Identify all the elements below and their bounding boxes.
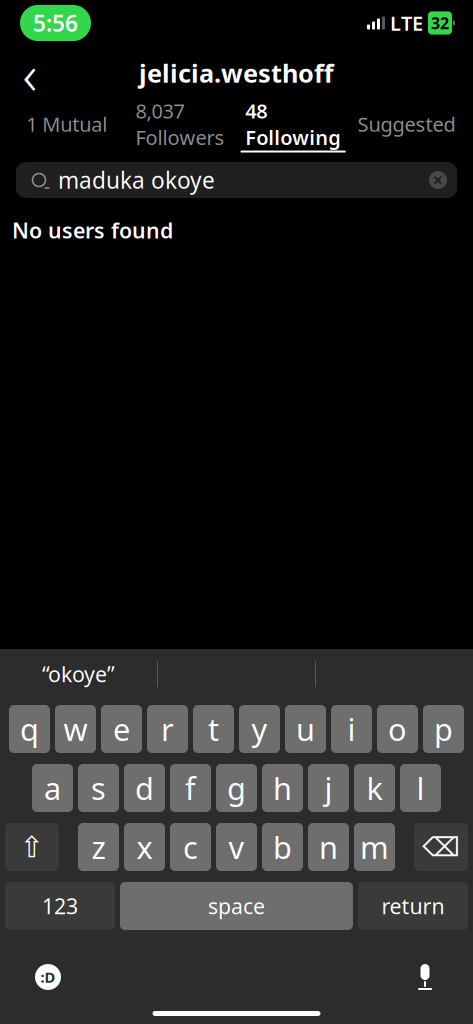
- staticText: ⇧: [19, 830, 44, 864]
- staticText: f: [185, 768, 196, 808]
- staticText: y: [251, 709, 267, 749]
- button[interactable]: b: [262, 823, 303, 871]
- staticText: ‹: [22, 36, 37, 110]
- button[interactable]: z: [78, 823, 119, 871]
- staticText: return: [381, 892, 444, 920]
- staticText: n: [319, 827, 338, 867]
- staticText: 1 Mutual: [26, 111, 107, 137]
- staticText: e: [113, 709, 130, 749]
- button[interactable]: i: [331, 705, 372, 753]
- staticText: 32: [431, 12, 449, 34]
- button[interactable]: m: [354, 823, 395, 871]
- staticText: w: [63, 709, 87, 749]
- staticText: v: [228, 827, 244, 867]
- button[interactable]: j: [308, 764, 349, 812]
- staticText: LTE: [390, 10, 423, 36]
- staticText: s: [91, 768, 106, 808]
- button[interactable]: f: [170, 764, 211, 812]
- button[interactable]: t: [193, 705, 234, 753]
- staticText: ×: [432, 168, 443, 192]
- button[interactable]: r: [147, 705, 188, 753]
- staticText: g: [227, 768, 246, 808]
- button[interactable]: Emoji keyboard: [26, 955, 70, 999]
- staticText: ⌫: [422, 832, 460, 862]
- staticText: p: [434, 709, 453, 749]
- staticText: x: [136, 827, 152, 867]
- staticText: No users found: [12, 216, 173, 244]
- staticText: k: [366, 768, 382, 808]
- button[interactable]: h: [262, 764, 303, 812]
- button[interactable]: space: [120, 882, 353, 930]
- button[interactable]: “okoye”: [0, 649, 157, 699]
- staticText: d: [135, 768, 154, 808]
- staticText: u: [296, 709, 315, 749]
- button[interactable]: Dictation: [403, 955, 447, 999]
- button[interactable]: Back: [8, 51, 52, 95]
- staticText: space: [208, 892, 265, 920]
- staticText: r: [161, 709, 174, 749]
- staticText: 48 Following: [245, 97, 341, 150]
- button[interactable]: a: [32, 764, 73, 812]
- staticText: 123: [42, 892, 78, 920]
- button[interactable]: 1 Mutual: [10, 101, 123, 149]
- button[interactable]: return: [358, 882, 468, 930]
- button[interactable]: s: [78, 764, 119, 812]
- staticText: m: [360, 827, 389, 867]
- staticText: b: [273, 827, 292, 867]
- staticText: i: [347, 709, 355, 749]
- button[interactable]: l: [400, 764, 441, 812]
- staticText: h: [273, 768, 292, 808]
- staticText: z: [91, 827, 105, 867]
- button[interactable]: 48 Following: [236, 101, 350, 149]
- staticText: j: [324, 768, 332, 808]
- button[interactable]: v: [216, 823, 257, 871]
- staticText: maduka okoye: [58, 165, 215, 195]
- button[interactable]: Shift: [5, 823, 59, 871]
- button[interactable]: 123: [5, 882, 115, 930]
- button[interactable]: w: [55, 705, 96, 753]
- button[interactable]: x: [124, 823, 165, 871]
- button[interactable]: Delete: [414, 823, 468, 871]
- button[interactable]: q: [9, 705, 50, 753]
- button[interactable]: y: [239, 705, 280, 753]
- staticText: “okoye”: [42, 660, 115, 688]
- button[interactable]: u: [285, 705, 326, 753]
- staticText: c: [183, 827, 198, 867]
- button[interactable]: Suggested: [350, 101, 463, 149]
- staticText: a: [44, 768, 61, 808]
- button[interactable]: Clear text: [423, 165, 453, 195]
- staticText: q: [20, 709, 39, 749]
- button[interactable]: d: [124, 764, 165, 812]
- button[interactable]: o: [377, 705, 418, 753]
- button[interactable]: p: [423, 705, 464, 753]
- staticText: :D: [40, 967, 55, 987]
- button[interactable]: k: [354, 764, 395, 812]
- button[interactable]: n: [308, 823, 349, 871]
- staticText: t: [208, 709, 219, 749]
- button[interactable]: 8,037 Followers: [123, 101, 236, 149]
- button[interactable]: c: [170, 823, 211, 871]
- staticText: l: [416, 768, 424, 808]
- staticText: jelicia.westhoff: [139, 56, 334, 90]
- staticText: o: [388, 709, 407, 749]
- button[interactable]: e: [101, 705, 142, 753]
- button[interactable]: g: [216, 764, 257, 812]
- staticText: 8,037 Followers: [135, 97, 224, 150]
- staticText: Suggested: [357, 111, 455, 137]
- staticText: 5:56: [33, 8, 78, 38]
